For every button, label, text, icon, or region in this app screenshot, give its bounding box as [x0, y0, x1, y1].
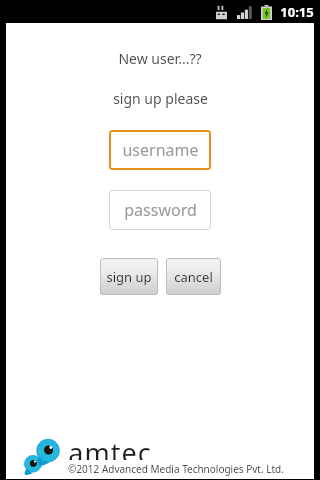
staticText: amtec: [68, 434, 152, 460]
staticText: 10:15: [280, 3, 314, 21]
staticText: New user...??: [118, 49, 202, 68]
button[interactable]: username field: [109, 130, 211, 170]
button[interactable]: sign up: [100, 258, 158, 295]
button[interactable]: cancel: [166, 258, 221, 295]
staticText: username: [122, 139, 199, 161]
button[interactable]: password field: [109, 190, 211, 230]
staticText: ©2012 Advanced Media Technologies Pvt. L…: [68, 462, 284, 476]
staticText: password: [124, 199, 197, 221]
staticText: sign up please: [113, 89, 208, 108]
staticText: cancel: [174, 268, 213, 286]
staticText: sign up: [106, 268, 152, 286]
